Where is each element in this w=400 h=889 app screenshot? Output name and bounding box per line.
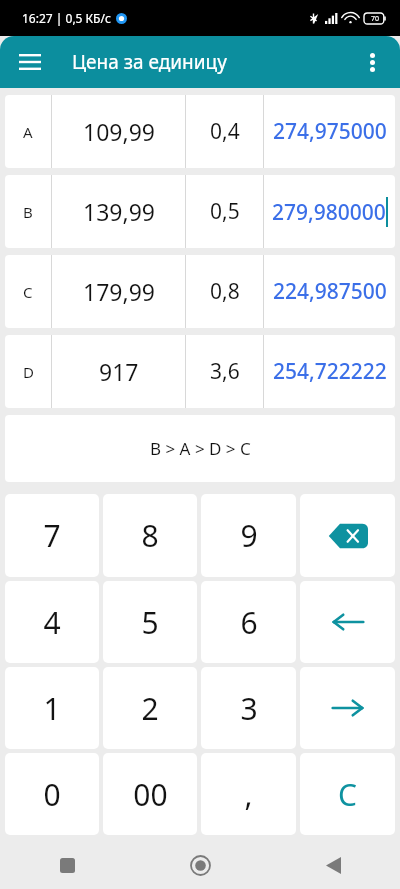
staticText: 2 [141,688,159,729]
button[interactable]: B > A > D > C [5,415,395,482]
staticText: 7 [43,515,61,556]
staticText: Цена за единицу [72,49,227,75]
staticText: 0,8 [210,277,240,306]
staticText: A [23,122,33,142]
staticText: 0,4 [210,117,240,146]
staticText: C [23,282,33,302]
button[interactable]: C [300,753,395,835]
button[interactable]: 7 [5,494,99,577]
staticText: 254,722222 [273,357,387,386]
button[interactable]: 2 [103,667,197,749]
staticText: 8 [141,515,159,556]
button[interactable]: , [201,753,296,835]
staticText: 279,980000 [272,198,386,227]
staticText: 179,99 [83,276,155,307]
staticText: 224,987500 [273,277,387,306]
button[interactable]: Recent apps [0,841,134,889]
button[interactable]: A [5,95,395,168]
button[interactable]: B [5,175,395,248]
button[interactable]: D [5,335,395,408]
staticText: 3,6 [210,357,240,386]
button[interactable]: 1 [5,667,99,749]
staticText: 00 [133,774,168,815]
button[interactable]: 4 [5,581,99,663]
button[interactable]: Home [134,841,267,889]
staticText: D [23,362,34,382]
button[interactable]: Backspace [300,494,395,577]
button[interactable]: 0 [5,753,99,835]
button[interactable]: Next field [300,667,395,749]
staticText: 9 [240,515,258,556]
staticText: 3 [240,688,258,729]
button[interactable]: More options [350,40,394,84]
button[interactable]: 5 [103,581,197,663]
button[interactable]: Back [267,841,400,889]
staticText: 4 [43,602,61,643]
button[interactable]: Open navigation menu [8,40,52,84]
staticText: 274,975000 [273,117,387,146]
staticText: 0 [43,774,61,815]
button[interactable]: 8 [103,494,197,577]
button[interactable]: Previous field [300,581,395,663]
staticText: 70 [371,14,380,24]
staticText: 917 [99,356,139,387]
button[interactable]: 3 [201,667,296,749]
staticText: 0,5 [210,197,240,226]
staticText: , [244,774,253,815]
staticText: 109,99 [83,116,155,147]
staticText: B [23,202,33,222]
staticText: 139,99 [83,196,155,227]
staticText: 6 [240,602,258,643]
staticText: 5 [141,602,159,643]
staticText: 16:27 | 0,5 КБ/с [22,10,111,26]
button[interactable]: 00 [103,753,197,835]
staticText: B > A > D > C [150,437,251,460]
staticText: C [338,774,357,815]
button[interactable]: 6 [201,581,296,663]
staticText: 1 [43,688,61,729]
button[interactable]: C [5,255,395,328]
button[interactable]: 9 [201,494,296,577]
